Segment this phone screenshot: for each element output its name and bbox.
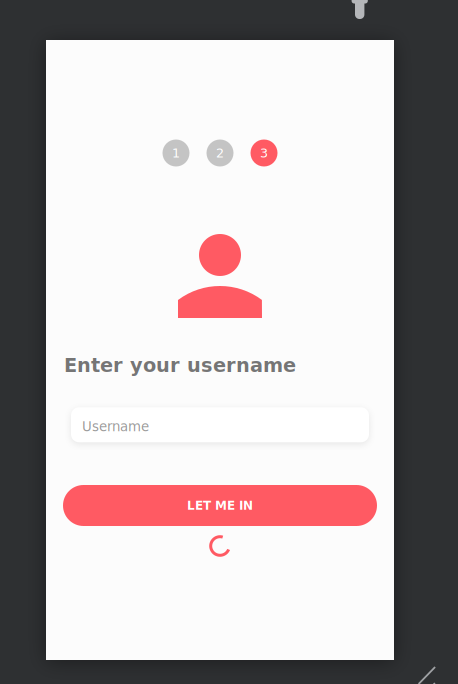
staticText: Enter your username <box>64 354 296 376</box>
staticText: 1 <box>172 146 180 160</box>
staticText: 2 <box>216 146 224 160</box>
staticText: 3 <box>260 146 268 160</box>
button[interactable]: 2 <box>206 139 233 166</box>
button[interactable]: LET ME IN <box>63 485 377 526</box>
button[interactable]: 1 <box>162 139 189 166</box>
staticText: Username <box>82 419 149 434</box>
staticText: LET ME IN <box>187 498 253 512</box>
button[interactable]: 3 <box>250 139 277 166</box>
